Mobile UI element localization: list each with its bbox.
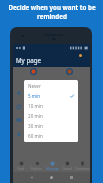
- button[interactable]: My page: [45, 161, 60, 171]
- staticText: My page: [16, 56, 41, 64]
- button[interactable]: 30 min: [24, 121, 78, 131]
- staticText: Explore: [31, 167, 43, 171]
- button[interactable]: 5 min: [24, 91, 78, 101]
- button[interactable]: Feed: [13, 161, 29, 171]
- staticText: My page: [46, 167, 59, 171]
- staticText: 20 min: [28, 113, 43, 119]
- staticText: 5 min: [28, 93, 41, 99]
- staticText: Community: [75, 167, 90, 172]
- button[interactable]: Saved: [60, 161, 75, 171]
- staticText: Saved: [63, 167, 72, 171]
- button[interactable]: 10 min: [24, 101, 78, 111]
- staticText: Feed: [17, 167, 25, 171]
- button[interactable]: 60 min: [24, 131, 78, 141]
- staticText: reminded: [37, 12, 67, 20]
- staticText: 30 min: [28, 123, 43, 129]
- staticText: 10 min: [28, 103, 43, 109]
- button[interactable]: Notifications: [79, 54, 82, 57]
- staticText: Never: [28, 83, 41, 89]
- button[interactable]: 20 min: [24, 111, 78, 121]
- button[interactable]: Community: [75, 161, 90, 172]
- staticText: 60 min: [28, 133, 43, 139]
- staticText: Decide when you want to be: [8, 3, 96, 11]
- button[interactable]: Never: [24, 81, 78, 91]
- button[interactable]: Explore: [29, 161, 45, 171]
